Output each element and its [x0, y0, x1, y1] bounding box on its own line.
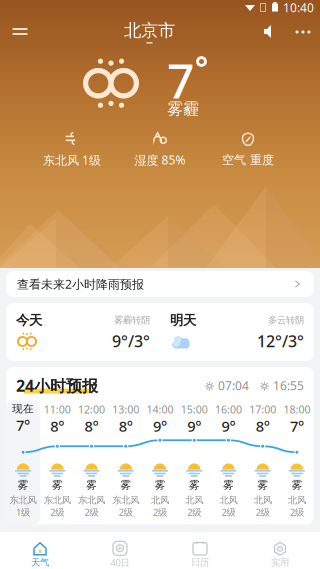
- staticText: 07:04: [218, 378, 249, 394]
- button[interactable]: 40日: [80, 532, 160, 569]
- staticText: 查看未来2小时降雨预报: [17, 276, 144, 292]
- staticText: 多云转阴: [268, 314, 304, 326]
- staticText: 雾: [154, 478, 165, 491]
- staticText: 雾: [18, 478, 29, 491]
- button[interactable]: 明天: [160, 303, 314, 361]
- staticText: 18:00: [283, 402, 310, 416]
- staticText: 北京市: [124, 20, 175, 41]
- staticText: 2级: [85, 506, 99, 518]
- staticText: 40日: [110, 556, 129, 569]
- staticText: 17:00: [249, 402, 276, 416]
- button[interactable]: 天气: [0, 532, 80, 569]
- staticText: 11:00: [44, 402, 71, 416]
- staticText: 7°: [16, 415, 30, 435]
- staticText: 实用: [271, 557, 289, 568]
- staticText: 日历: [191, 557, 209, 568]
- button[interactable]: Menu: [0, 15, 40, 49]
- staticText: 北风: [254, 494, 272, 506]
- staticText: 湿度 85%: [134, 152, 185, 168]
- button[interactable]: 今天: [6, 303, 160, 361]
- staticText: 北风: [288, 494, 306, 506]
- staticText: 雾: [257, 478, 268, 491]
- staticText: 雾霾: [167, 99, 199, 119]
- staticText: 12:00: [78, 402, 105, 416]
- staticText: 9°/3°: [112, 330, 150, 352]
- staticText: 天气: [31, 557, 49, 568]
- staticText: 8°: [256, 416, 270, 436]
- staticText: 现在: [12, 402, 34, 415]
- staticText: 东北风: [44, 494, 71, 506]
- button[interactable]: 查看未来2小时降雨预报: [6, 271, 314, 297]
- staticText: 7°: [290, 416, 304, 436]
- staticText: 8°: [119, 416, 133, 436]
- staticText: 2级: [187, 506, 201, 518]
- staticText: 雾: [291, 478, 302, 491]
- staticText: 雾霾转阴: [114, 314, 150, 326]
- staticText: 东北风: [78, 494, 105, 506]
- staticText: 东北风 1级: [43, 152, 101, 168]
- staticText: 2级: [290, 506, 304, 518]
- staticText: 雾: [189, 478, 200, 491]
- staticText: 东北风: [112, 494, 139, 506]
- staticText: 2级: [221, 506, 235, 518]
- staticText: 10:40: [283, 0, 314, 15]
- staticText: 9°: [153, 416, 167, 436]
- staticText: 8°: [85, 416, 99, 436]
- staticText: 15:00: [181, 402, 208, 416]
- staticText: 雾: [223, 478, 234, 491]
- staticText: 7: [167, 48, 194, 112]
- staticText: 8°: [50, 416, 64, 436]
- staticText: 明天: [170, 312, 196, 328]
- staticText: 13:00: [112, 402, 139, 416]
- button[interactable]: 日历: [160, 532, 240, 569]
- staticText: 2级: [50, 506, 64, 518]
- staticText: 24小时预报: [16, 375, 98, 396]
- staticText: 14:00: [146, 402, 173, 416]
- staticText: 北风: [185, 494, 203, 506]
- button[interactable]: More: [290, 15, 316, 49]
- staticText: 北风: [219, 494, 237, 506]
- staticText: 空气 重度: [222, 153, 274, 167]
- staticText: 雾: [120, 478, 131, 491]
- staticText: 16:00: [215, 402, 242, 416]
- staticText: 2级: [119, 506, 133, 518]
- staticText: 东北风: [10, 494, 37, 506]
- button[interactable]: Sound: [259, 15, 281, 49]
- button[interactable]: 实用: [240, 532, 320, 569]
- staticText: 北风: [151, 494, 169, 506]
- staticText: 1级: [16, 506, 30, 518]
- staticText: 9°: [221, 416, 235, 436]
- staticText: 雾: [52, 478, 63, 491]
- staticText: 9°: [187, 416, 201, 436]
- staticText: 2级: [153, 506, 167, 518]
- staticText: 16:55: [273, 378, 304, 394]
- staticText: 雾: [86, 478, 97, 491]
- staticText: 2级: [256, 506, 270, 518]
- staticText: 今天: [16, 312, 42, 328]
- staticText: 12°/3°: [257, 330, 304, 352]
